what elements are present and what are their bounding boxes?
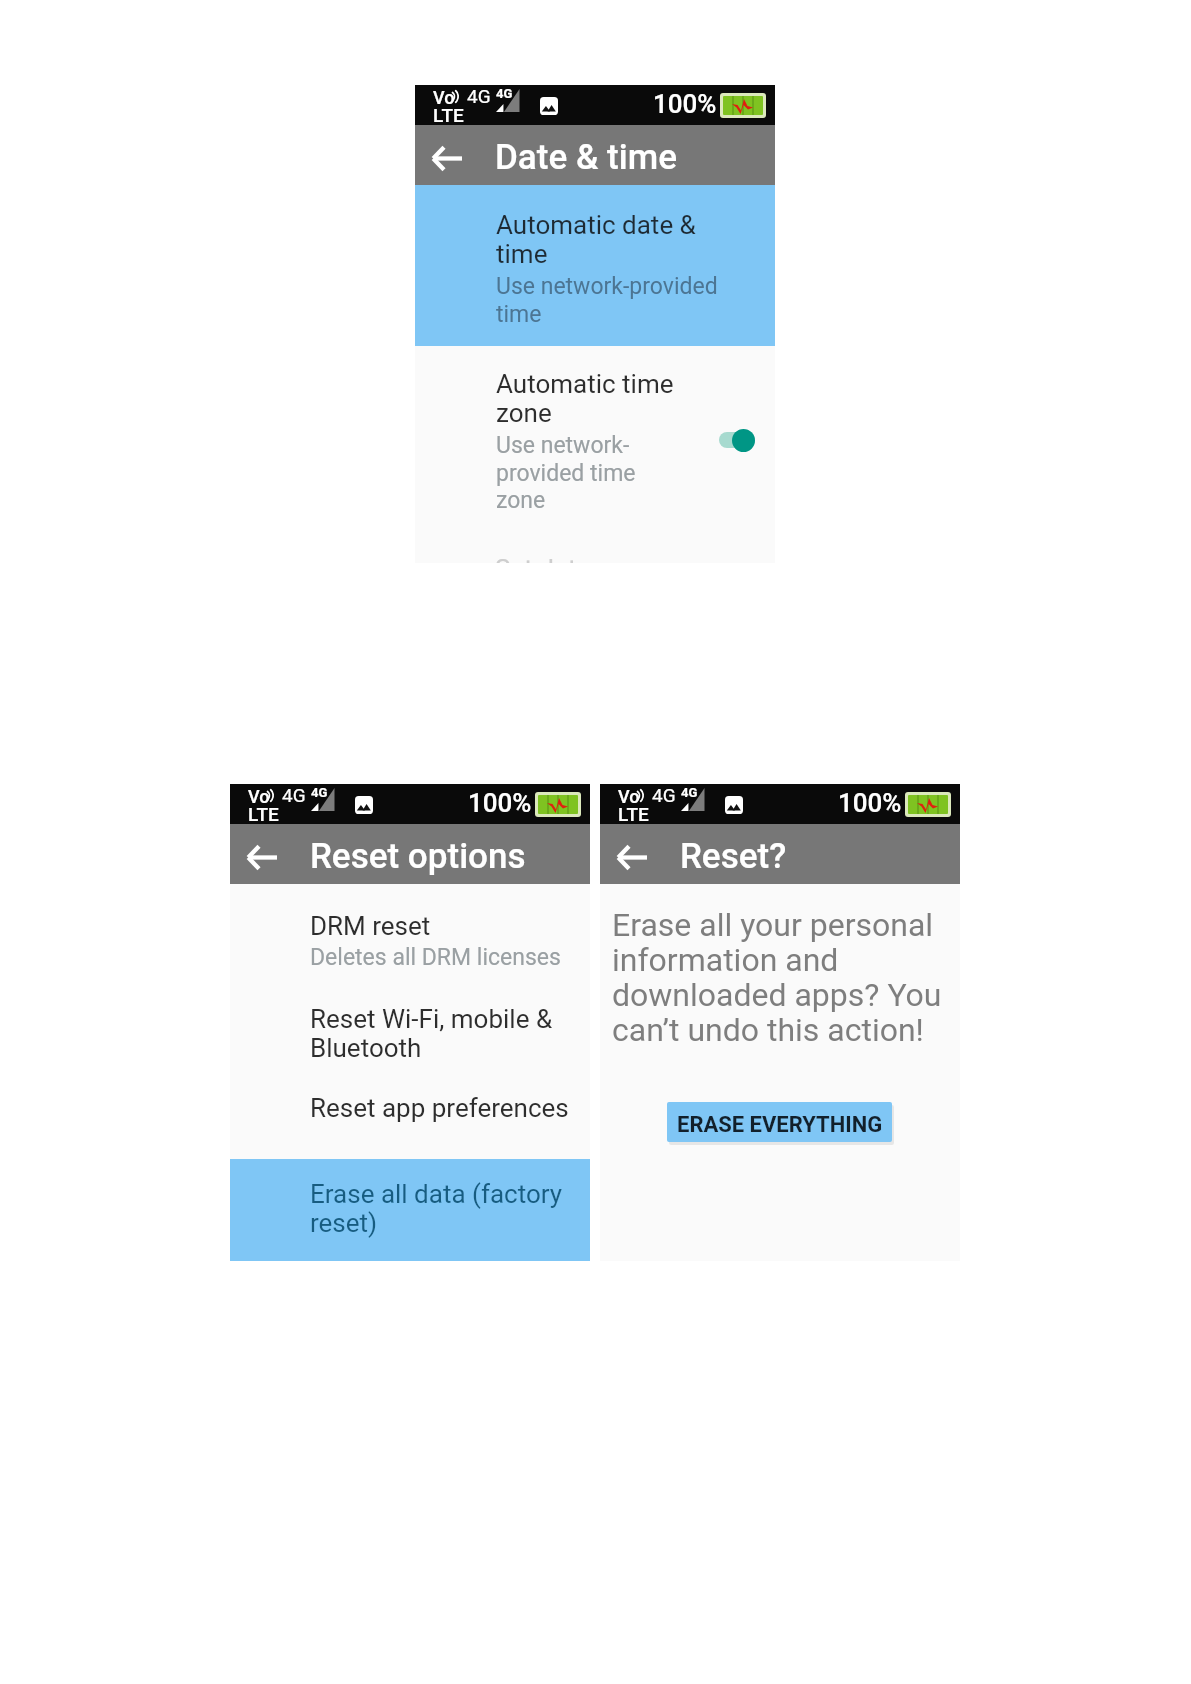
staticText: Vo	[618, 786, 640, 807]
button[interactable]: Back	[230, 824, 310, 884]
staticText: Use network-provided time zone	[496, 432, 686, 513]
button[interactable]: Reset Wi-Fi, mobile & Bluetooth	[230, 978, 590, 1065]
staticText: Erase all your personal information and …	[612, 906, 943, 1048]
button[interactable]: Back	[415, 125, 495, 185]
staticText: Use network-provided time	[496, 273, 747, 327]
staticText: Vo	[248, 786, 270, 807]
button[interactable]: Reset app preferences	[230, 1065, 590, 1159]
staticText: LTE	[248, 803, 279, 825]
staticText: LTE	[433, 104, 464, 126]
staticText: 100%	[838, 788, 902, 818]
staticText: LTE	[618, 803, 649, 825]
staticText: ERASE EVERYTHING	[677, 1112, 883, 1138]
staticText: 4G	[681, 785, 698, 800]
staticText: 4G	[311, 785, 328, 800]
staticText: DRM reset	[310, 911, 431, 941]
staticText: Reset app preferences	[310, 1093, 569, 1123]
staticText: 4G	[652, 784, 676, 806]
button[interactable]: Back	[600, 824, 680, 884]
staticText: Deletes all DRM licenses	[310, 944, 561, 971]
staticText: 100%	[653, 89, 717, 119]
button[interactable]: Automatic time zone toggle, on	[719, 428, 759, 452]
staticText: Automatic time zone	[496, 369, 686, 429]
staticText: Set date	[495, 554, 591, 563]
button[interactable]: Automatic date & time	[415, 185, 775, 346]
button[interactable]: Erase all data (factory reset)	[230, 1159, 590, 1261]
staticText: 4G	[496, 86, 513, 101]
staticText: Reset?	[680, 836, 787, 877]
staticText: Vo	[433, 87, 455, 108]
staticText: Automatic date & time	[496, 210, 747, 270]
staticText: 4G	[282, 784, 306, 806]
staticText: Reset options	[310, 836, 526, 877]
staticText: Erase all data (factory reset)	[310, 1179, 572, 1239]
button[interactable]: ERASE EVERYTHING	[667, 1102, 892, 1142]
staticText: 4G	[467, 85, 491, 107]
button[interactable]: DRM reset	[230, 884, 590, 978]
staticText: 100%	[468, 788, 532, 818]
staticText: Reset Wi-Fi, mobile & Bluetooth	[310, 1004, 572, 1064]
button[interactable]: Automatic time zone	[415, 346, 775, 554]
staticText: Date & time	[495, 137, 677, 178]
